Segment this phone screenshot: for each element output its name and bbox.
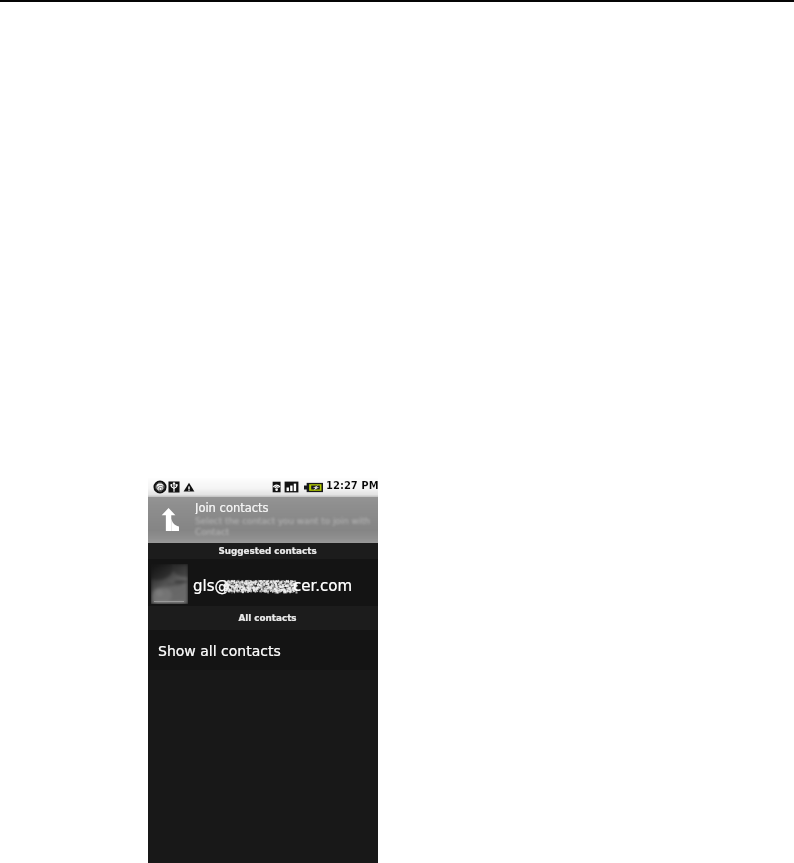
staticText: Join contacts (195, 501, 269, 514)
other: Join contacts (161, 508, 179, 531)
staticText: Select the contact you want to join with… (195, 516, 377, 537)
staticText: cer.com (293, 577, 353, 594)
staticText: Suggested contacts (218, 546, 317, 556)
button[interactable]: gls@ (148, 559, 378, 606)
staticText: All contacts (238, 613, 297, 623)
staticText: Show all contacts (158, 643, 281, 659)
button[interactable]: Show all contacts (148, 630, 378, 670)
staticText: @ (156, 483, 165, 493)
staticText: gls@ (193, 577, 230, 594)
staticText: 12:27 PM (326, 480, 379, 492)
